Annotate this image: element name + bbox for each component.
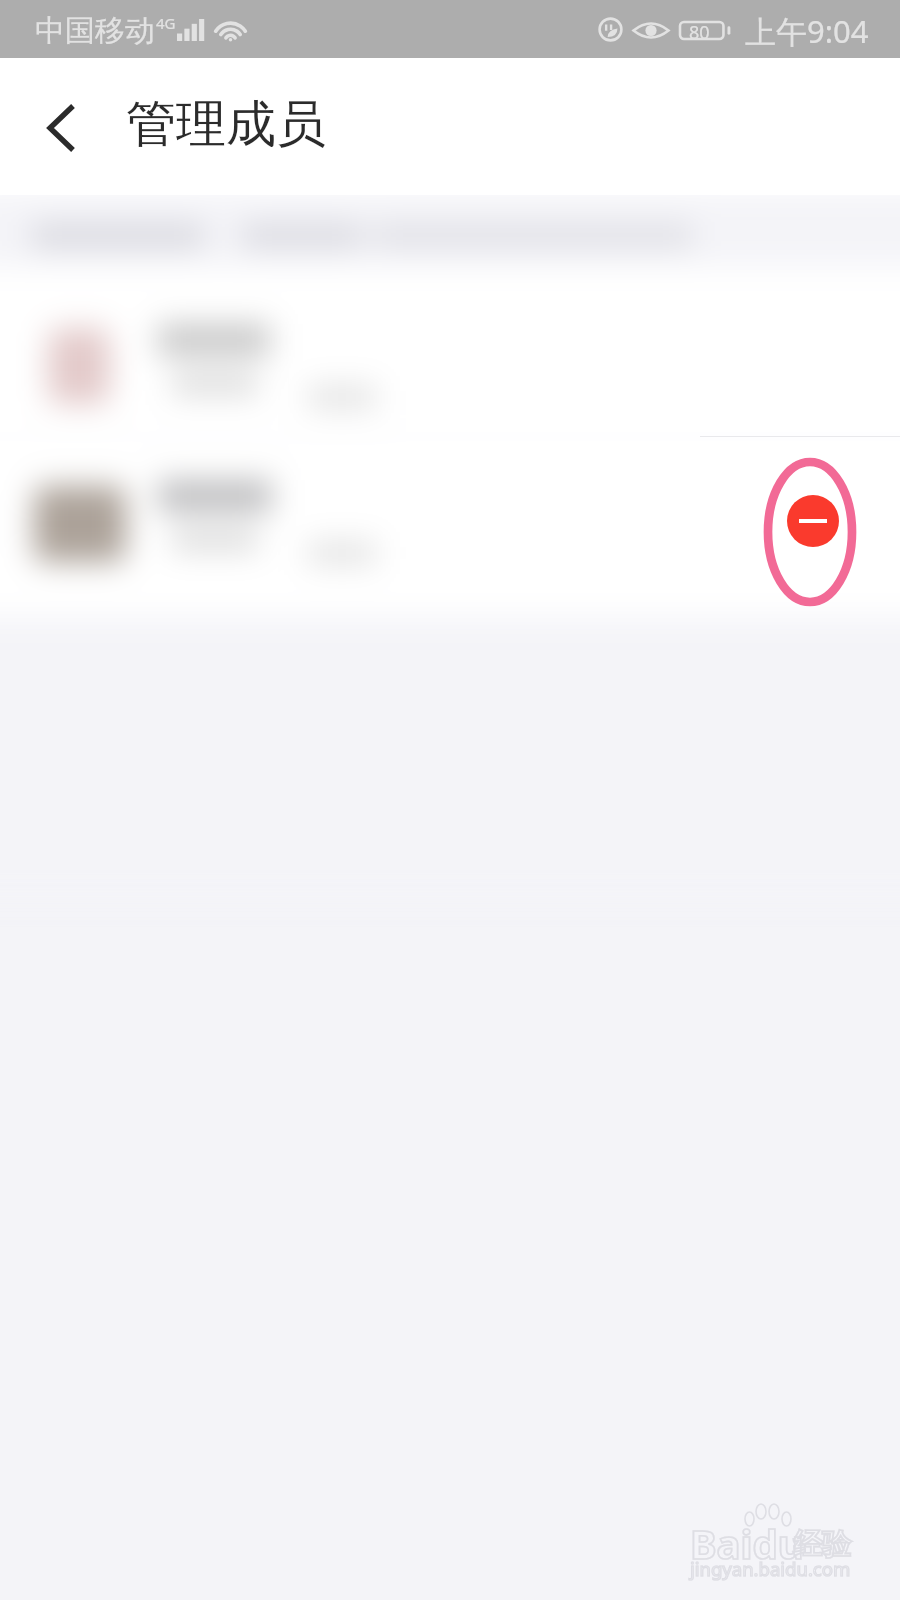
- staticText: 80: [689, 20, 710, 45]
- staticText: 中国移动: [35, 12, 155, 50]
- staticText: 上午9:04: [745, 10, 869, 52]
- button[interactable]: Member 2: [0, 437, 900, 618]
- button[interactable]: Back: [20, 72, 104, 156]
- staticText: 4G: [156, 13, 176, 33]
- staticText: jingyan.baidu.com: [690, 1556, 851, 1581]
- button[interactable]: Member 1: [0, 266, 900, 436]
- button[interactable]: Remove member: [787, 495, 839, 547]
- staticText: 经验: [793, 1526, 851, 1563]
- staticText: Baidu: [690, 1516, 804, 1570]
- staticText: 管理成员: [126, 93, 326, 156]
